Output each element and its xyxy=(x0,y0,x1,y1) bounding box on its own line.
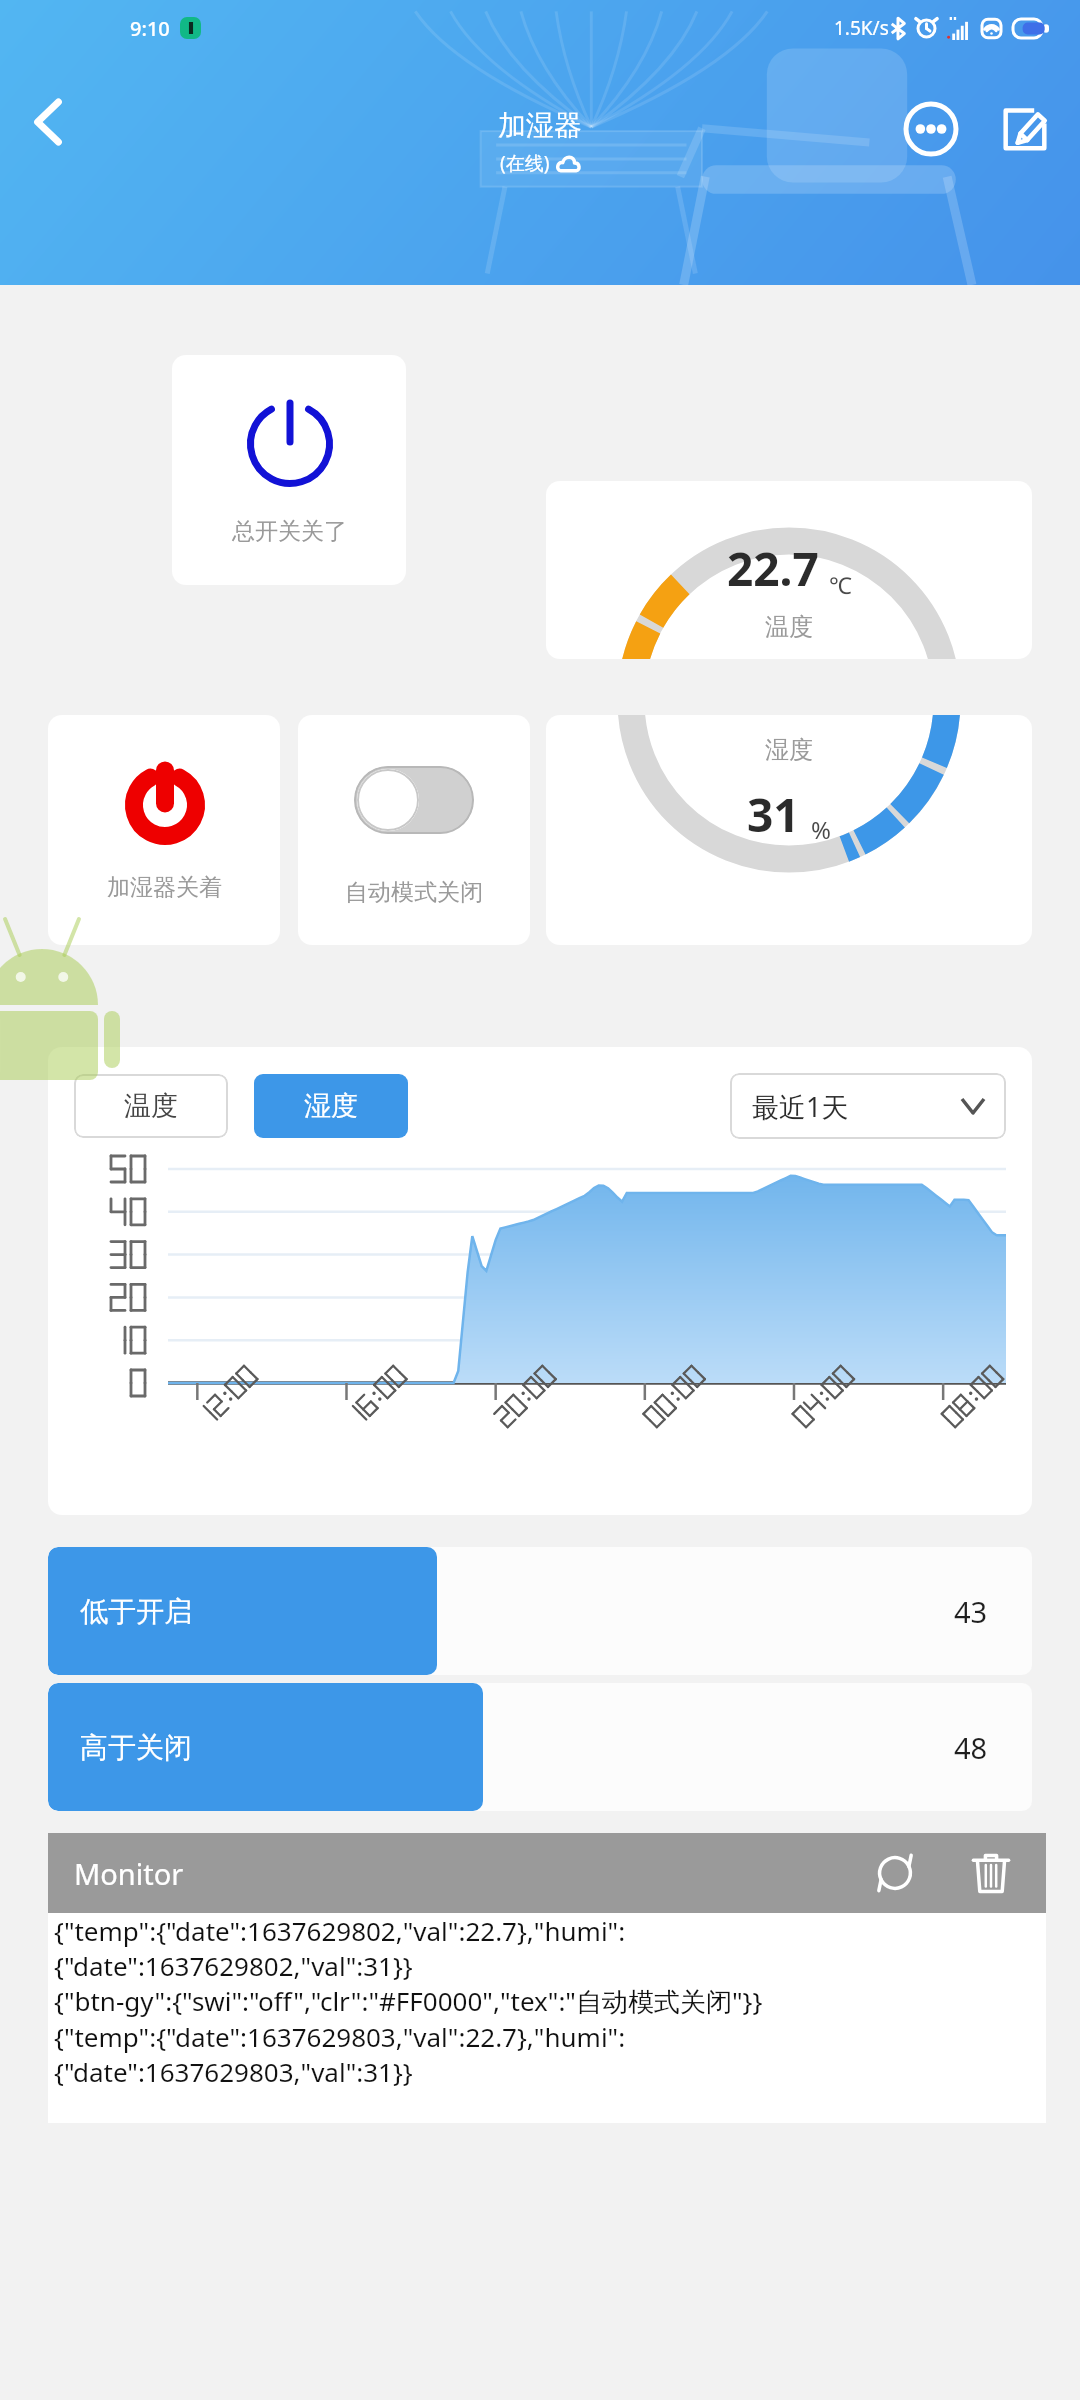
staticText: Monitor xyxy=(74,1854,184,1893)
button[interactable]: Back xyxy=(16,90,80,154)
staticText: 加湿器 xyxy=(498,108,582,143)
button[interactable]: 湿度 xyxy=(546,715,1032,945)
button[interactable]: 最近1天 xyxy=(730,1073,1006,1139)
staticText: ℃ xyxy=(829,569,852,600)
staticText: 22.7 xyxy=(727,537,819,600)
staticText: 低于开启 xyxy=(80,1594,192,1629)
staticText: 9:10 xyxy=(130,15,170,42)
staticText: 43 xyxy=(954,1592,988,1631)
button[interactable]: 加湿器关着 xyxy=(48,715,280,945)
staticText: 加湿器关着 xyxy=(107,873,222,902)
staticText: {"temp":{"date":1637629803,"val":22.7},"… xyxy=(54,2019,626,2054)
button[interactable]: 自动模式关闭 xyxy=(298,715,530,945)
button[interactable]: 22.7 xyxy=(546,481,1032,659)
button[interactable]: 低于开启 xyxy=(48,1547,1032,1675)
staticText: {"date":1637629803,"val":31}} xyxy=(54,2054,413,2089)
button[interactable]: Edit xyxy=(994,98,1056,160)
button[interactable]: 湿度 xyxy=(254,1074,408,1138)
staticText: 最近1天 xyxy=(752,1088,849,1125)
button[interactable]: Clear log xyxy=(962,1844,1020,1902)
button[interactable]: 总开关关了 xyxy=(172,355,406,585)
staticText: 总开关关了 xyxy=(232,517,347,546)
staticText: {"temp":{"date":1637629802,"val":22.7},"… xyxy=(54,1913,626,1948)
staticText: 自动模式关闭 xyxy=(345,878,483,907)
staticText: 31 xyxy=(747,783,800,846)
staticText: % xyxy=(811,813,831,846)
staticText: 湿度 xyxy=(304,1089,358,1123)
staticText: 1.5K/s xyxy=(834,15,889,41)
button[interactable]: 温度 xyxy=(74,1074,228,1138)
staticText: 温度 xyxy=(124,1089,178,1123)
staticText: 48 xyxy=(954,1728,988,1767)
staticText: 温度 xyxy=(765,612,813,642)
staticText: {"btn-gy":{"swi":"off","clr":"#FF0000","… xyxy=(54,1983,763,2019)
staticText: {"date":1637629802,"val":31}} xyxy=(54,1948,413,1983)
staticText: 湿度 xyxy=(765,735,813,765)
staticText: (在线) xyxy=(500,150,550,176)
button[interactable]: More options xyxy=(898,96,964,162)
button[interactable]: Refresh xyxy=(866,1844,924,1902)
button[interactable]: 高于关闭 xyxy=(48,1683,1032,1811)
staticText: 高于关闭 xyxy=(80,1730,192,1765)
